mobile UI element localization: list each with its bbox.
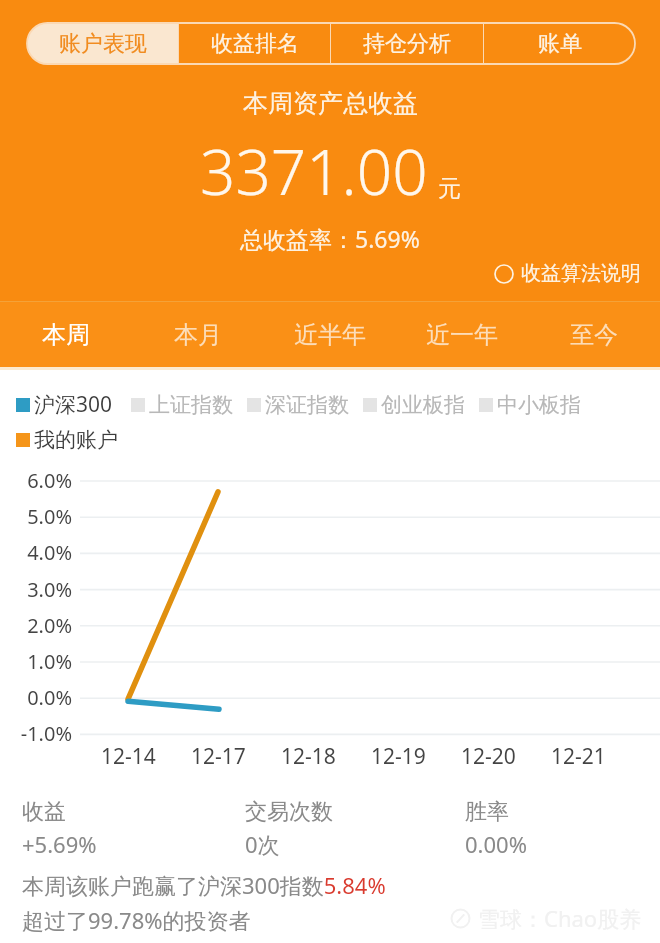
button[interactable]: 我的账户 [16,427,118,453]
staticText: 本周资产总收益 [243,88,418,119]
button[interactable]: 深证指数 [247,392,349,418]
staticText: 0.00% [465,829,527,859]
staticText: 雪球：Chao股养 [478,903,642,933]
button[interactable]: 近半年 [264,302,396,367]
staticText: 12-21 [551,742,606,771]
staticText: 交易次数 [245,798,333,826]
staticText: 收益算法说明 [521,261,641,286]
staticText: 12-18 [281,742,336,771]
button[interactable]: 沪深300 [16,390,113,419]
staticText: 创业板指 [381,392,465,418]
button[interactable]: 收益算法说明 [491,258,644,289]
button[interactable]: 本周 [0,302,132,367]
staticText: 近一年 [426,320,498,350]
other: 收益算法说明 [494,264,514,284]
staticText: 0.0% [27,684,72,711]
staticText: 至今 [570,320,618,350]
staticText: 2.0% [27,612,72,639]
staticText: 超过了99.78%的投资者 [22,905,251,935]
button[interactable]: 上证指数 [131,392,233,418]
button[interactable]: 收益排名 [179,23,330,64]
button[interactable]: 至今 [528,302,660,367]
staticText: 5.0% [27,503,72,530]
staticText: +5.69% [22,829,97,859]
staticText: 12-19 [371,742,426,771]
staticText: 账户表现 [59,30,147,58]
staticText: 元 [438,174,461,203]
staticText: 12-14 [101,742,156,771]
staticText: 我的账户 [34,427,118,453]
staticText: 收益 [22,798,66,826]
staticText: 总收益率：5.69% [240,223,420,254]
button[interactable]: 创业板指 [363,392,465,418]
staticText: 4.0% [27,539,72,566]
staticText: 3.0% [27,576,72,603]
button[interactable]: 账单 [484,23,635,64]
staticText: 12-20 [461,742,516,771]
staticText: 1.0% [27,648,72,675]
staticText: 3371.00 [200,129,428,213]
staticText: 深证指数 [265,392,349,418]
staticText: 沪深300 [34,390,113,419]
staticText: 本周该账户跑赢了沪深300指数5.84% [22,870,386,900]
staticText: 0次 [245,829,280,859]
staticText: 近半年 [294,320,366,350]
staticText: 6.0% [27,467,72,494]
staticText: 12-17 [191,742,246,771]
staticText: 本月 [174,320,222,350]
staticText: 账单 [538,30,582,58]
staticText: 上证指数 [149,392,233,418]
staticText: 胜率 [465,798,509,826]
staticText: 持仓分析 [363,30,451,58]
staticText: -1.0% [20,720,72,747]
button[interactable]: 账户表现 [27,23,178,64]
staticText: 中小板指 [497,392,581,418]
staticText: 本周 [42,320,90,350]
button[interactable]: 持仓分析 [331,23,483,64]
button[interactable]: 近一年 [396,302,528,367]
button[interactable]: 中小板指 [479,392,581,418]
button[interactable]: 本月 [132,302,264,367]
staticText: 收益排名 [211,30,299,58]
